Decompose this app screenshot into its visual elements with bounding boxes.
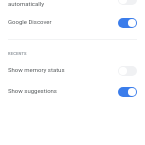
staticText: Show suggestions [8,87,57,94]
staticText: Google Discover [8,18,52,25]
button[interactable]: Update automatically, off [118,0,137,5]
staticText: RECENTS [8,51,27,56]
button[interactable]: Google Discover, on [118,18,137,28]
button[interactable]: Show memory status [0,63,145,79]
button[interactable]: Show memory status, off [118,66,137,76]
button[interactable]: automatically [0,0,145,8]
button[interactable]: Show suggestions, on [118,87,137,97]
button[interactable]: Show suggestions [0,84,145,100]
staticText: automatically [8,0,45,7]
staticText: Show memory status [8,66,65,73]
button[interactable]: Google Discover [0,15,145,31]
